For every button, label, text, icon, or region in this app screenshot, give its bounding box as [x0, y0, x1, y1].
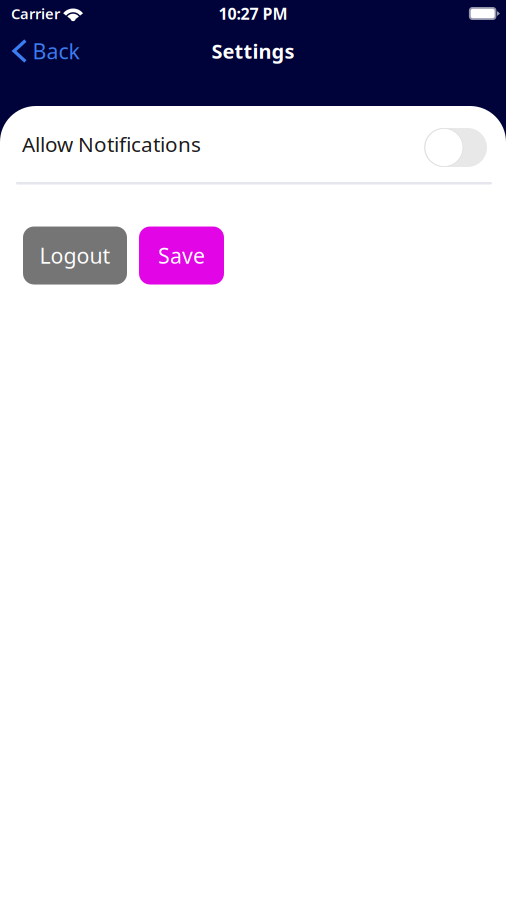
staticText: Logout: [39, 241, 110, 270]
staticText: Allow Notifications: [22, 130, 201, 158]
staticText: 10:27 PM: [218, 3, 287, 24]
button[interactable]: Logout: [23, 226, 127, 284]
button[interactable]: Save: [139, 226, 224, 284]
button[interactable]: Back: [0, 29, 89, 73]
button[interactable]: Allow Notifications: [424, 121, 487, 167]
staticText: Save: [158, 241, 205, 270]
staticText: Back: [32, 37, 79, 65]
staticText: Carrier: [11, 4, 60, 23]
staticText: Settings: [211, 38, 294, 64]
